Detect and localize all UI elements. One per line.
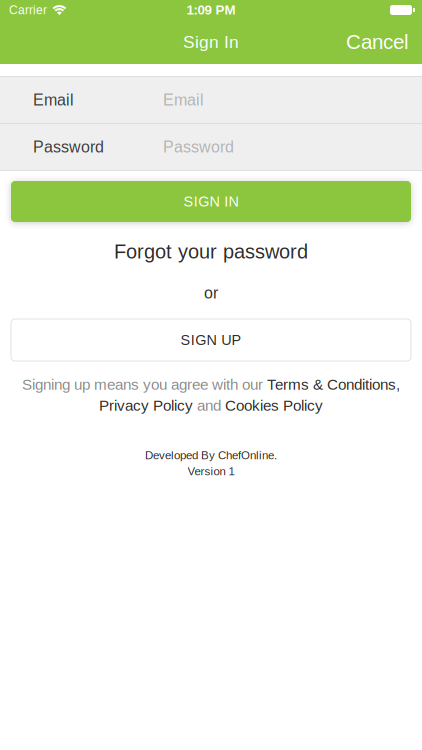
staticText: Signing up means you agree with our [22,376,267,393]
staticText: Cancel [346,30,409,53]
staticText: Version 1 [187,465,234,478]
staticText: SIGN UP [180,332,242,348]
staticText: Password [163,138,234,156]
staticText: Forgot your password [114,240,308,263]
staticText: Email [33,91,74,109]
button[interactable]: Cancel [338,21,417,62]
staticText: Cookies Policy [225,397,323,414]
staticText: 1:09 PM [186,3,235,17]
button[interactable]: Forgot your password [114,240,308,263]
staticText: Developed By ChefOnline. [145,449,277,462]
staticText: Carrier [9,3,47,17]
button[interactable]: Cookies Policy [225,397,323,414]
staticText: SIGN IN [183,193,239,210]
staticText: Email [163,91,204,109]
staticText: Sign In [183,32,239,52]
button[interactable]: Privacy Policy [99,397,193,414]
staticText: Password [33,138,104,156]
button[interactable]: SIGN IN [11,181,411,222]
textField[interactable]: Email [0,77,422,123]
staticText: or [204,284,218,302]
staticText: Terms & Conditions, [267,376,400,393]
button[interactable]: Terms & Conditions, [267,376,400,393]
button[interactable]: SIGN UP [11,319,411,361]
staticText: Privacy Policy [99,397,193,414]
secureTextField[interactable]: Password [0,124,422,170]
staticText: and [193,397,225,414]
